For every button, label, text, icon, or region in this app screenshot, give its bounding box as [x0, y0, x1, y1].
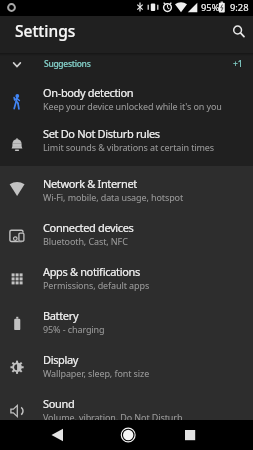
- staticText: Network & Internet: [43, 176, 137, 191]
- staticText: Wallpaper, sleep, font size: [43, 367, 150, 379]
- staticText: Bluetooth, Cast, NFC: [43, 235, 128, 247]
- staticText: Display: [43, 352, 79, 367]
- staticText: Settings: [15, 20, 76, 41]
- button[interactable]: [0, 420, 85, 450]
- staticText: Wi-Fi, mobile, data usage, hotspot: [43, 191, 184, 203]
- button[interactable]: Battery: [0, 299, 253, 343]
- button[interactable]: [229, 18, 253, 42]
- button[interactable]: Suggestions: [0, 53, 253, 79]
- staticText: +1: [233, 58, 243, 70]
- staticText: Suggestions: [44, 58, 91, 70]
- staticText: 95%: [201, 1, 220, 14]
- button[interactable]: Connected devices: [0, 211, 253, 255]
- staticText: Sound: [43, 396, 75, 411]
- button[interactable]: [85, 420, 169, 450]
- staticText: Volume, vibration, Do Not Disturb: [43, 411, 183, 423]
- button[interactable]: On-body detection: [0, 79, 253, 120]
- staticText: On-body detection: [43, 85, 134, 100]
- button[interactable]: Apps & notifications: [0, 255, 253, 299]
- staticText: Keep your device unlocked while it's on …: [43, 100, 222, 112]
- button[interactable]: [169, 420, 253, 450]
- staticText: Permissions, default apps: [43, 279, 150, 291]
- staticText: Set Do Not Disturb rules: [43, 126, 160, 141]
- staticText: Connected devices: [43, 220, 134, 235]
- button[interactable]: Set Do Not Disturb rules: [0, 120, 253, 161]
- staticText: 9:28: [230, 1, 249, 14]
- staticText: Apps & notifications: [43, 264, 140, 279]
- button[interactable]: Network & Internet: [0, 167, 253, 211]
- button[interactable]: Sound: [0, 387, 253, 431]
- staticText: Battery: [43, 308, 79, 323]
- staticText: Limit sounds & vibrations at certain tim…: [43, 141, 215, 153]
- staticText: 95% - charging: [43, 323, 105, 335]
- button[interactable]: Display: [0, 343, 253, 387]
